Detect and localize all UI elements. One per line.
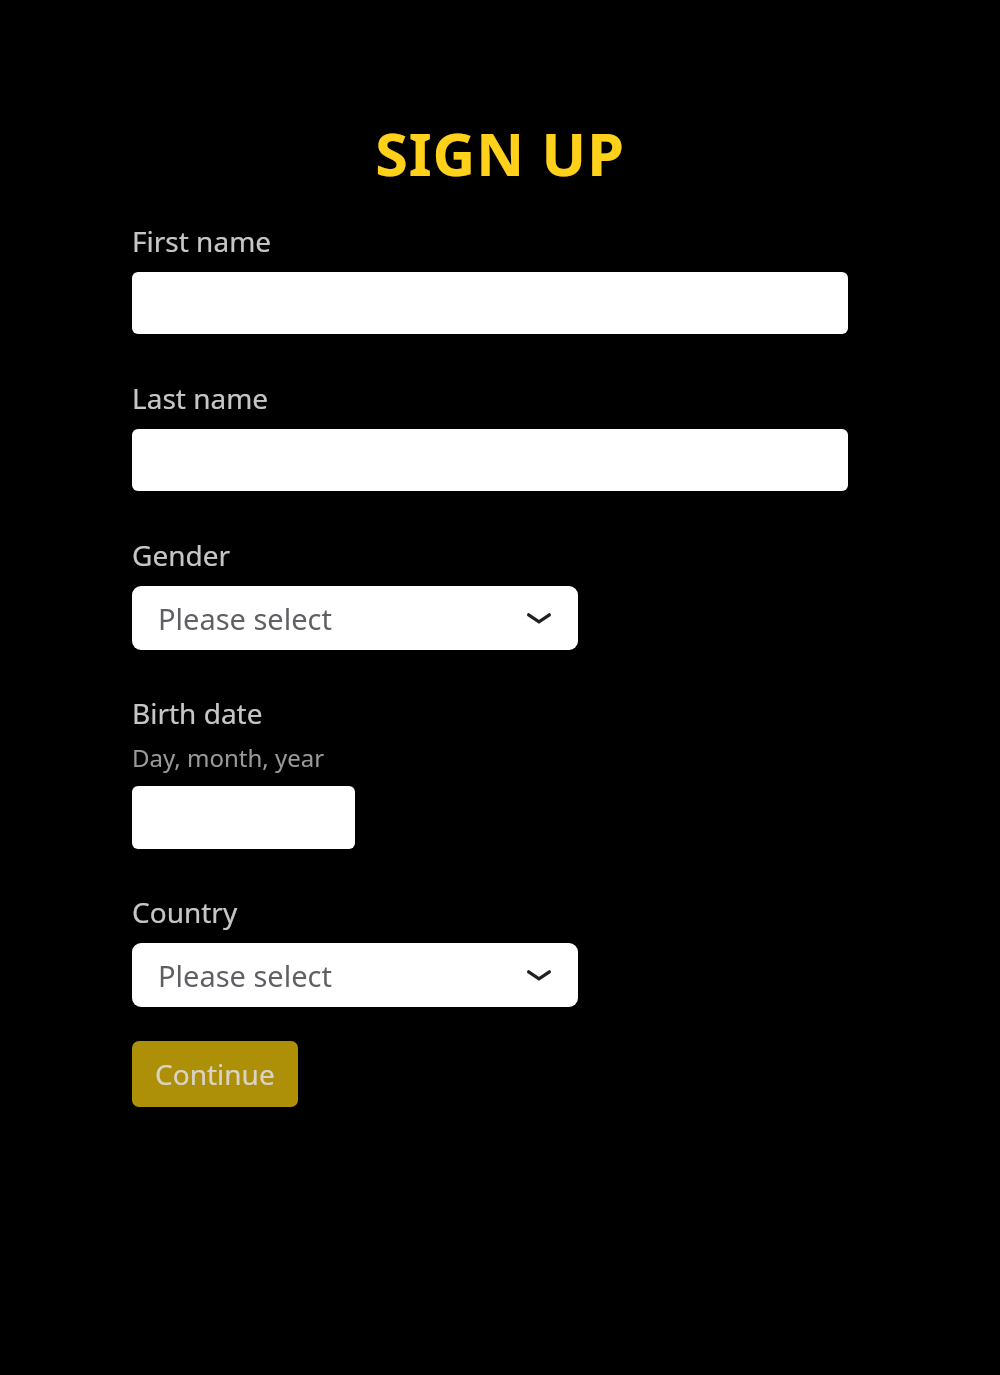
staticText: Gender xyxy=(132,536,231,574)
button[interactable]: Please select xyxy=(132,943,578,1007)
staticText: Last name xyxy=(132,379,269,417)
button[interactable]: Text input field xyxy=(132,786,355,849)
staticText: Continue xyxy=(155,1055,275,1093)
staticText: Birth date xyxy=(132,694,263,732)
button[interactable]: Text input field xyxy=(132,272,848,334)
button[interactable]: Continue xyxy=(132,1041,298,1107)
button[interactable]: Text input field xyxy=(132,429,848,491)
staticText: Day, month, year xyxy=(132,741,325,774)
staticText: Please select xyxy=(158,599,332,638)
staticText: First name xyxy=(132,222,272,260)
staticText: SIGN UP xyxy=(0,113,1000,193)
staticText: Country xyxy=(132,893,238,931)
button[interactable]: Please select xyxy=(132,586,578,650)
staticText: Please select xyxy=(158,956,332,995)
